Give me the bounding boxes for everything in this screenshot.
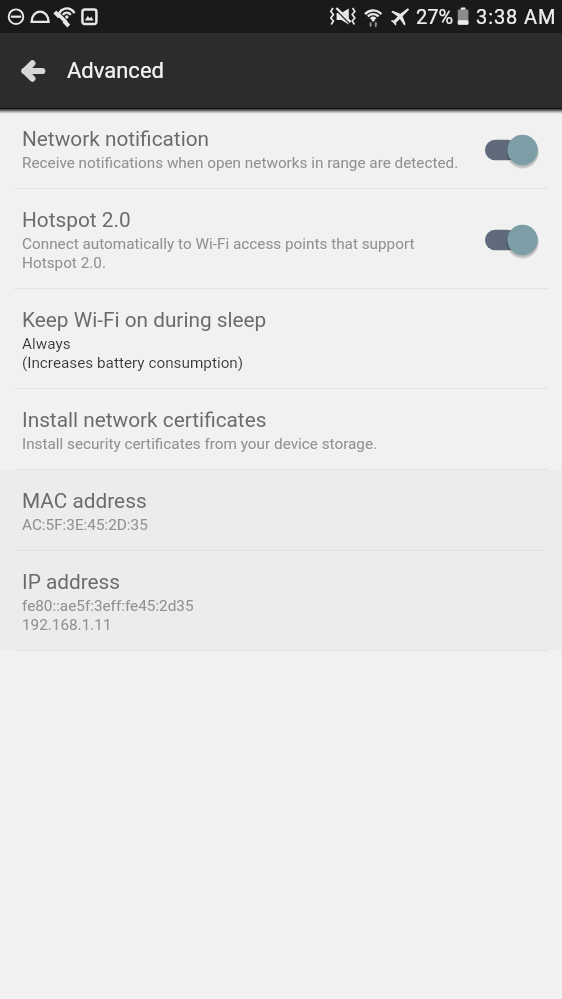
staticText: Receive notifications when open networks… xyxy=(22,154,459,172)
staticText: MAC address xyxy=(22,489,147,513)
button[interactable]: Hotspot 2.0 xyxy=(0,189,562,288)
button[interactable]: Network notification xyxy=(0,108,562,188)
staticText: Keep Wi-Fi on during sleep xyxy=(22,308,267,332)
button[interactable]: IP address xyxy=(0,551,562,650)
staticText: 3:38 AM xyxy=(476,5,557,28)
staticText: fe80::ae5f:3eff:fe45:2d35 192.168.1.11 xyxy=(22,597,194,634)
staticText: Hotspot 2.0 xyxy=(22,208,131,232)
button[interactable]: Keep Wi-Fi on during sleep xyxy=(0,289,562,388)
button[interactable]: Navigate up xyxy=(10,49,54,93)
staticText: Advanced xyxy=(67,58,164,84)
staticText: Connect automatically to Wi-Fi access po… xyxy=(22,235,415,272)
staticText: 27% xyxy=(416,5,454,28)
button[interactable]: Install network certificates xyxy=(0,389,562,469)
button[interactable]: MAC address xyxy=(0,470,562,550)
staticText: Install network certificates xyxy=(22,408,267,432)
staticText: IP address xyxy=(22,570,121,594)
staticText: Network notification xyxy=(22,127,210,151)
staticText: Always (Increases battery consumption) xyxy=(22,335,244,372)
button[interactable]: Toggle setting xyxy=(480,130,548,170)
button[interactable]: Toggle setting xyxy=(480,220,548,260)
staticText: Install security certificates from your … xyxy=(22,435,378,453)
staticText: AC:5F:3E:45:2D:35 xyxy=(22,516,148,534)
